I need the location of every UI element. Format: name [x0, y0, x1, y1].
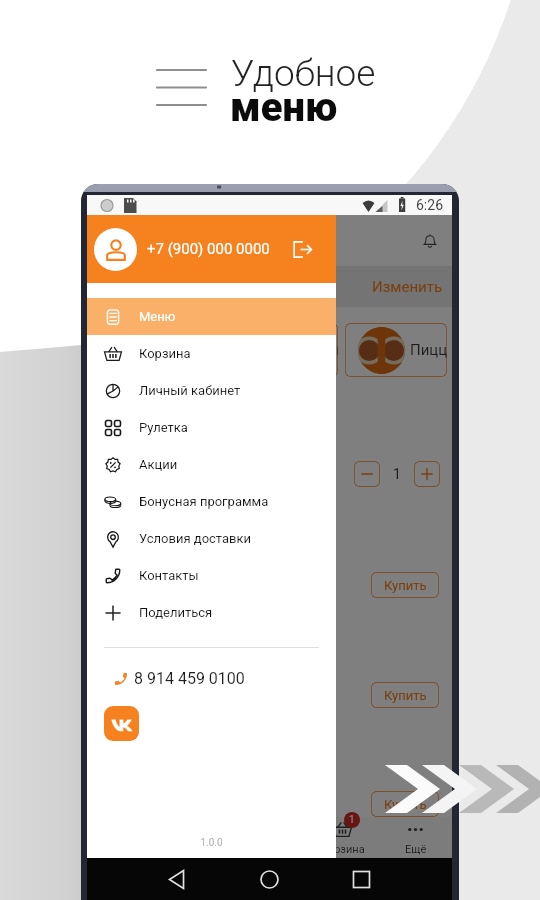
button[interactable]: Бонусная программа	[87, 483, 336, 520]
staticText: Купить	[384, 688, 427, 703]
staticText: Корзина	[139, 346, 191, 361]
button[interactable]: Акции	[87, 446, 336, 483]
button[interactable]: Log out	[293, 240, 312, 259]
staticText: 8 914 459 0100	[134, 669, 245, 688]
staticText: Бонусная программа	[139, 494, 269, 509]
staticText: Ещё	[405, 843, 427, 856]
staticText: 1.0.0	[87, 837, 336, 849]
staticText: Удобное	[231, 52, 376, 95]
button[interactable]: 1	[306, 817, 379, 858]
button[interactable]: Рулетка	[87, 409, 336, 446]
button[interactable]: Меню	[87, 298, 336, 335]
staticText: Поделиться	[139, 605, 213, 620]
staticText: Роллы	[301, 341, 338, 359]
staticText: Пиццы	[410, 341, 447, 359]
button[interactable]: 8 914 459 0100	[113, 669, 336, 688]
button[interactable]: Корзина	[87, 335, 336, 372]
staticText: меню	[230, 84, 338, 131]
button[interactable]: Поделиться	[87, 594, 336, 631]
staticText: 1	[393, 466, 401, 482]
button[interactable]: Пиццы	[345, 323, 447, 377]
button[interactable]: Личный кабинет	[87, 372, 336, 409]
button[interactable]: VKontakte	[104, 706, 139, 741]
staticText: Условия доставки	[139, 531, 252, 546]
staticText: 6:26	[416, 197, 443, 213]
staticText: Контакты	[139, 568, 199, 583]
button[interactable]: Условия доставки	[87, 520, 336, 557]
button[interactable]: Изменить	[372, 278, 443, 296]
staticText: Корзина	[321, 843, 365, 856]
button[interactable]: Акции	[160, 817, 233, 858]
staticText: 1	[349, 814, 355, 826]
staticText: +7 (900) 000 0000	[147, 240, 270, 258]
button[interactable]: Купить	[371, 682, 439, 708]
button[interactable]: Notifications	[423, 234, 437, 248]
button[interactable]: Купить	[371, 572, 439, 598]
staticText: Личный кабинет	[139, 383, 241, 398]
staticText: Меню	[139, 309, 176, 324]
button[interactable]: Decrease	[354, 461, 380, 487]
staticText: Купить	[384, 578, 427, 593]
staticText: Рулетка	[139, 420, 188, 435]
button[interactable]: +7 (900) 000 0000	[87, 215, 336, 283]
staticText: Акции	[180, 843, 213, 856]
button[interactable]: Супы	[127, 323, 229, 377]
button[interactable]: Increase	[414, 461, 440, 487]
button[interactable]: Роллы	[236, 323, 338, 377]
button[interactable]: Ещё	[379, 817, 452, 858]
staticText: Акции	[139, 457, 178, 472]
button[interactable]: Купить	[371, 791, 439, 817]
button[interactable]: Контакты	[87, 557, 336, 594]
staticText: Купить	[384, 797, 427, 812]
